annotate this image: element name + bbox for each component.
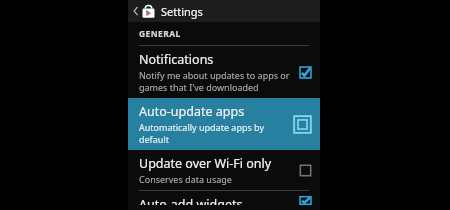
button[interactable]: Auto-update apps: [128, 98, 320, 150]
staticText: Update over Wi-Fi only: [139, 155, 272, 172]
staticText: default: [139, 133, 169, 145]
staticText: Conserves data usage: [139, 173, 232, 185]
staticText: Automatically update apps by: [139, 121, 265, 133]
button[interactable]: Toggle setting: [293, 115, 312, 134]
staticText: Auto-update apps: [139, 103, 245, 120]
button[interactable]: Toggle setting: [299, 164, 312, 177]
staticText: Notify me about updates to apps or: [139, 69, 290, 81]
button[interactable]: Notifications: [128, 46, 320, 98]
other: Back: [132, 4, 139, 18]
other: Google Play Store: [141, 4, 156, 19]
button[interactable]: Toggle setting: [299, 196, 312, 205]
staticText: GENERAL: [139, 28, 181, 40]
staticText: Notifications: [139, 51, 214, 68]
staticText: Settings: [161, 4, 203, 19]
staticText: Auto-add widgets: [139, 196, 243, 205]
staticText: games that I've downloaded: [139, 81, 259, 93]
button[interactable]: Auto-add widgets: [128, 191, 320, 210]
button[interactable]: Update over Wi-Fi only: [128, 150, 320, 190]
button[interactable]: Toggle setting: [299, 66, 312, 79]
button[interactable]: Back: [128, 0, 320, 22]
